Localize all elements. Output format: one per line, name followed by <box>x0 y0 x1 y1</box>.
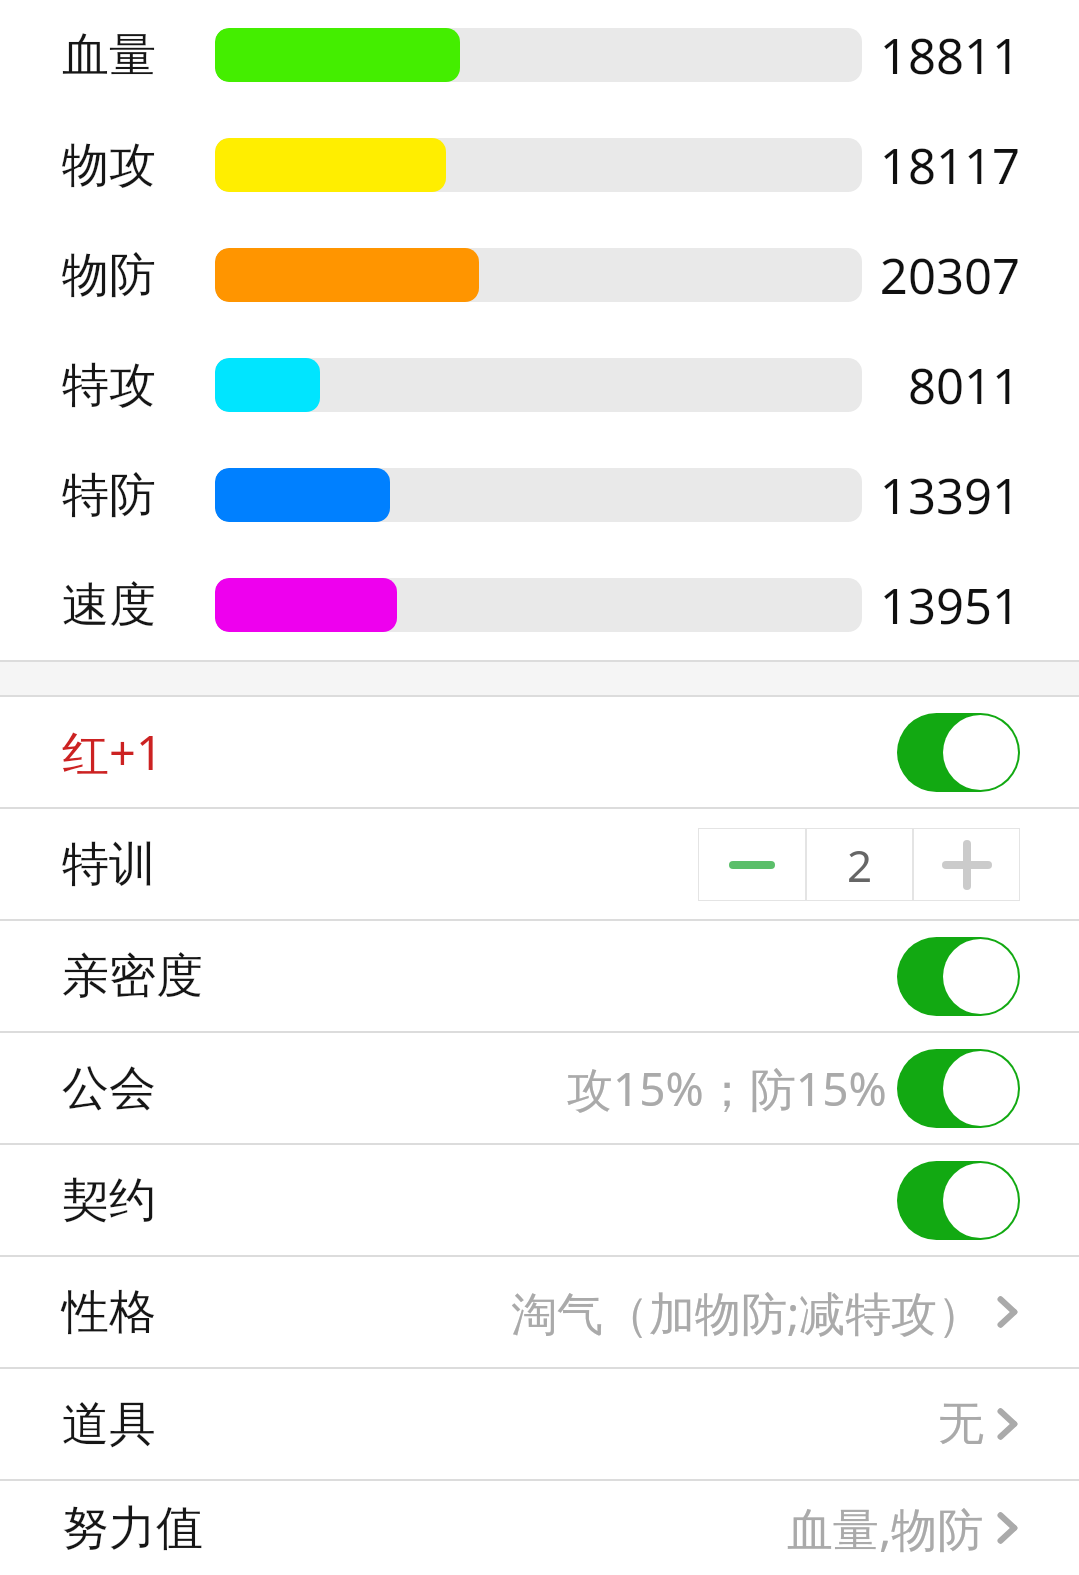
staticText: 特训 <box>62 835 156 894</box>
staticText: 血量 <box>62 26 156 85</box>
staticText: 8011 <box>907 352 1020 419</box>
button[interactable]: 红+1 <box>0 697 1079 807</box>
staticText: 攻15%；防15% <box>567 1057 887 1120</box>
staticText: 道具 <box>62 1395 156 1454</box>
button[interactable]: Decrease <box>699 829 805 900</box>
button[interactable]: 2 <box>807 829 912 900</box>
button[interactable]: 亲密度 <box>0 921 1079 1031</box>
staticText: 2 <box>847 835 873 895</box>
button[interactable]: Toggle <box>897 1049 1020 1128</box>
button[interactable]: Increase <box>914 829 1019 900</box>
button[interactable]: 道具 <box>0 1369 1079 1479</box>
staticText: 红+1 <box>62 720 163 784</box>
staticText: 物防 <box>62 246 156 305</box>
staticText: 努力值 <box>62 1499 203 1558</box>
button[interactable]: Toggle <box>897 937 1020 1016</box>
staticText: 公会 <box>62 1059 156 1118</box>
staticText: 契约 <box>62 1171 156 1230</box>
staticText: 性格 <box>62 1283 156 1342</box>
button[interactable]: 努力值 <box>0 1481 1079 1575</box>
staticText: 18117 <box>879 132 1020 199</box>
staticText: 13951 <box>879 572 1020 639</box>
staticText: 特防 <box>62 466 156 525</box>
button[interactable]: 性格 <box>0 1257 1079 1367</box>
button[interactable]: Toggle <box>897 713 1020 792</box>
staticText: 速度 <box>62 576 156 635</box>
staticText: 无 <box>938 1395 984 1453</box>
staticText: 亲密度 <box>62 947 203 1006</box>
staticText: 物攻 <box>62 136 156 195</box>
staticText: 20307 <box>879 242 1020 309</box>
staticText: 血量,物防 <box>787 1497 984 1560</box>
button[interactable]: Toggle <box>897 1161 1020 1240</box>
staticText: 13391 <box>879 462 1020 529</box>
button[interactable]: 公会 <box>0 1033 1079 1143</box>
staticText: 18811 <box>879 22 1020 89</box>
button[interactable]: 特训 <box>0 809 1079 919</box>
button[interactable]: 契约 <box>0 1145 1079 1255</box>
staticText: 特攻 <box>62 356 156 415</box>
staticText: 淘气（加物防;减特攻） <box>511 1281 984 1344</box>
